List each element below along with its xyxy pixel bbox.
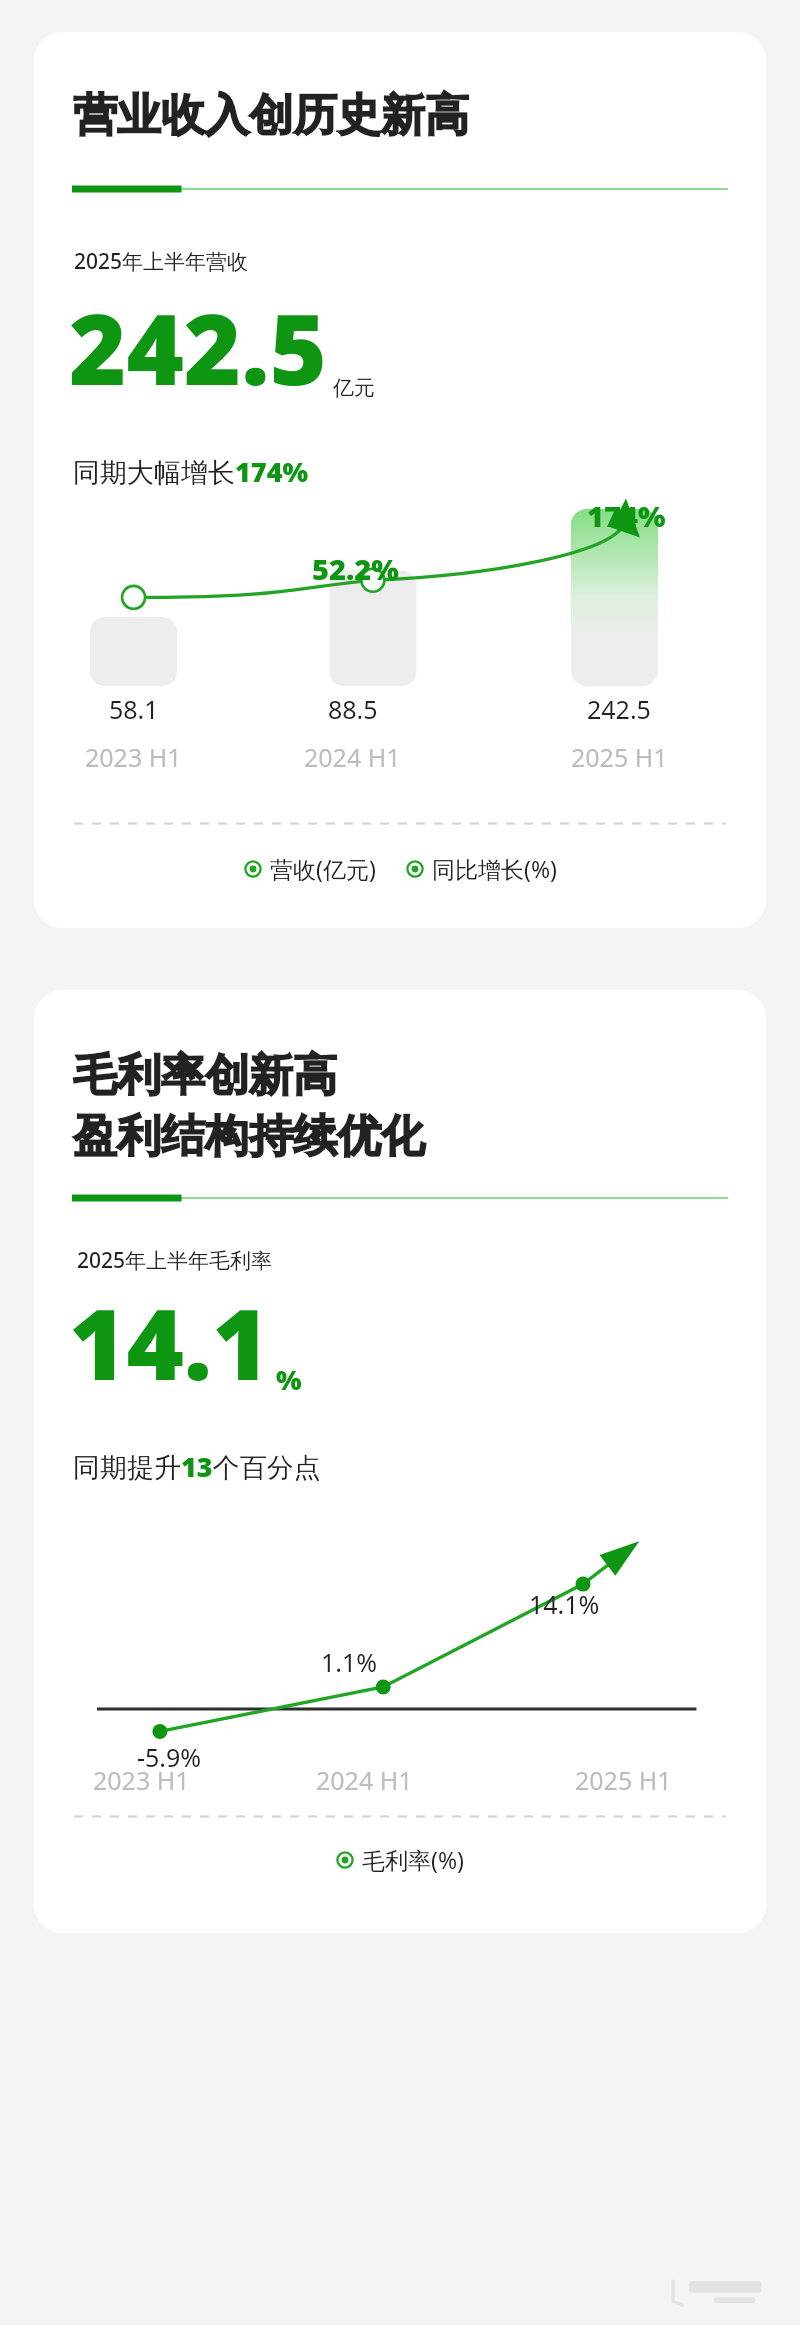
staticText: 2025年上半年毛利率 (77, 1246, 273, 1275)
staticText: 242.5 (69, 280, 328, 413)
staticText: 2023 H1 (93, 1763, 190, 1795)
staticText: 242.5 (587, 692, 651, 726)
staticText: 毛利率创新高 盈利结构持续优化 (73, 1048, 425, 1164)
staticText: 174% (587, 496, 666, 535)
staticText: 52.2% (312, 549, 399, 588)
staticText: 2024 H1 (304, 740, 401, 774)
staticText: 2025 H1 (571, 740, 668, 774)
staticText: 同比增长(%) (432, 853, 557, 884)
staticText: 14.1 (69, 1275, 270, 1408)
staticText: 2023 H1 (85, 740, 182, 774)
staticText: 2025年上半年营收 (74, 247, 249, 276)
staticText: 毛利率(%) (362, 1844, 464, 1875)
staticText: 营收(亿元) (270, 853, 376, 884)
staticText: 同期提升13个百分点 (73, 1448, 321, 1485)
staticText: 同期大幅增长174% (73, 453, 309, 490)
staticText: 亿元 (333, 375, 375, 401)
staticText: 2025 H1 (575, 1763, 672, 1795)
staticText: 14.1% (529, 1587, 600, 1621)
staticText: 2024 H1 (316, 1763, 413, 1795)
staticText: 1.1% (321, 1645, 378, 1679)
staticText: 88.5 (328, 692, 378, 726)
button[interactable]: 营业收入创历史新高 (34, 32, 766, 928)
staticText: -5.9% (137, 1740, 202, 1774)
button[interactable]: 毛利率创新高 盈利结构持续优化 (34, 990, 766, 1933)
staticText: 营业收入创历史新高 (73, 88, 469, 143)
staticText: 58.1 (109, 692, 159, 726)
staticText: % (276, 1361, 302, 1398)
